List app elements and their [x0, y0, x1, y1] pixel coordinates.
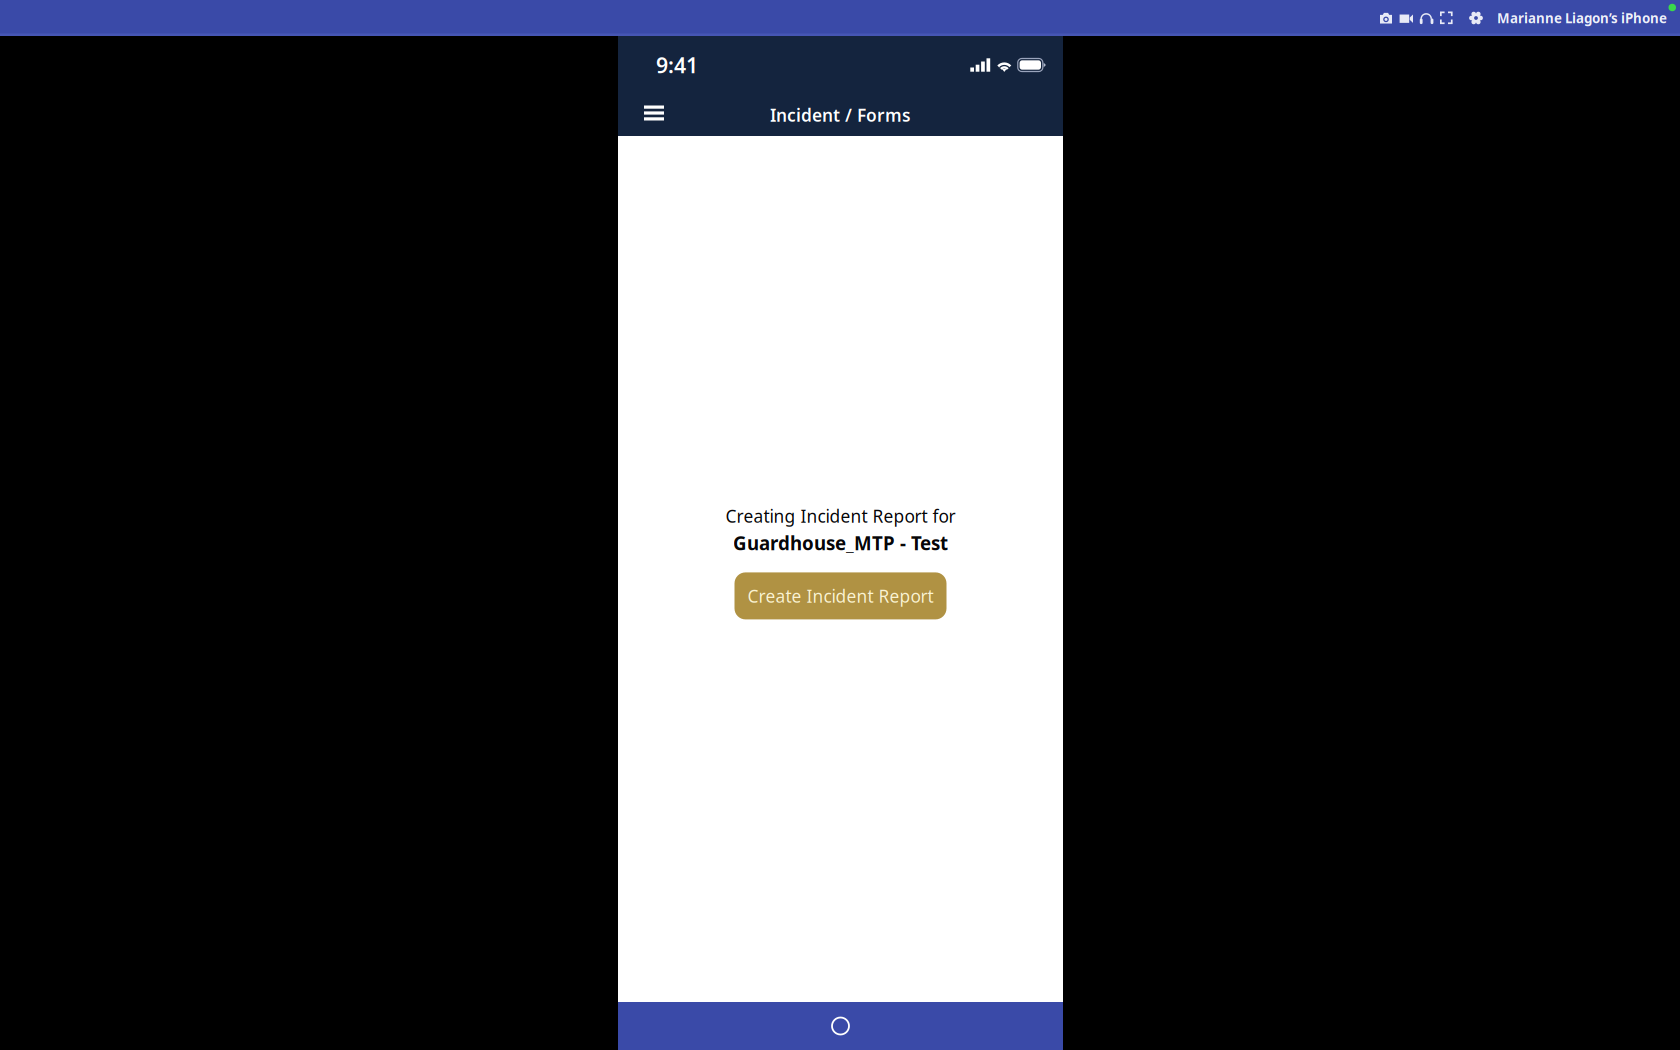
button[interactable]: Create Incident Report [734, 572, 946, 619]
staticText: 9:41 [656, 51, 698, 79]
button[interactable]: Record [1399, 11, 1413, 24]
staticText: Marianne Liagon’s iPhone [1497, 9, 1667, 27]
button[interactable]: Full Screen [1440, 11, 1453, 24]
button[interactable]: Audio [1420, 11, 1434, 24]
staticText: Guardhouse_MTP - Test [733, 531, 948, 555]
staticText: Incident / Forms [770, 103, 911, 126]
staticText: Creating Incident Report for [725, 505, 955, 528]
staticText: Create Incident Report [747, 584, 933, 607]
button[interactable]: Menu [632, 95, 676, 134]
button[interactable]: Screenshot [1379, 11, 1393, 24]
button[interactable]: Settings [1469, 11, 1483, 25]
